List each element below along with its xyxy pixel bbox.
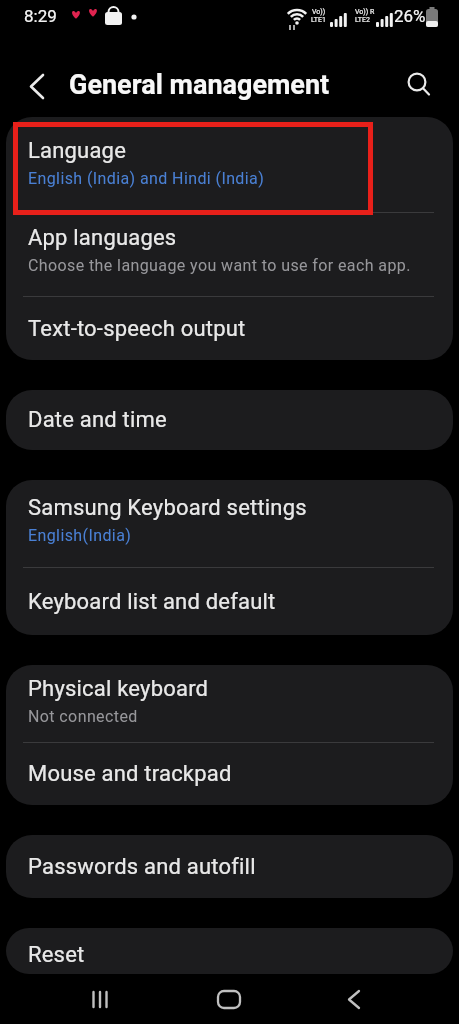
button[interactable] xyxy=(398,64,440,106)
button[interactable]: Text-to-speech output xyxy=(6,297,453,360)
button[interactable]: App languages xyxy=(6,213,453,296)
staticText: Reset xyxy=(28,942,85,968)
staticText: Not connected xyxy=(28,707,138,726)
button[interactable]: Reset xyxy=(6,928,453,974)
button[interactable]: Samsung Keyboard settings xyxy=(6,480,453,567)
button[interactable] xyxy=(209,975,249,1024)
staticText: 8:29 xyxy=(24,6,57,26)
button[interactable] xyxy=(80,975,120,1024)
button[interactable] xyxy=(20,66,60,106)
staticText: English (India) and Hindi (India) xyxy=(28,169,265,188)
staticText: Vo)) xyxy=(312,8,326,16)
staticText: Vo)) R xyxy=(355,8,375,16)
staticText: Passwords and autofill xyxy=(28,854,256,880)
staticText: LTE1 xyxy=(311,16,326,24)
staticText: General management xyxy=(69,69,330,101)
button[interactable]: Keyboard list and default xyxy=(6,568,453,635)
staticText: Physical keyboard xyxy=(28,676,209,702)
staticText: LTE2 xyxy=(355,16,370,24)
button[interactable]: Date and time xyxy=(6,390,453,450)
staticText: Mouse and trackpad xyxy=(28,761,232,787)
staticText: Date and time xyxy=(28,407,167,433)
button[interactable]: Passwords and autofill xyxy=(6,835,453,898)
staticText: Language xyxy=(28,138,127,164)
button[interactable]: Language xyxy=(6,117,453,212)
staticText: App languages xyxy=(28,225,177,251)
button[interactable]: Physical keyboard xyxy=(6,665,453,742)
button[interactable]: Mouse and trackpad xyxy=(6,743,453,805)
staticText: Samsung Keyboard settings xyxy=(28,495,307,521)
staticText: 26% xyxy=(394,6,426,26)
staticText: Keyboard list and default xyxy=(28,589,276,615)
button[interactable] xyxy=(334,975,374,1024)
staticText: Choose the language you want to use for … xyxy=(28,256,411,275)
staticText: English(India) xyxy=(28,526,132,545)
staticText: Text-to-speech output xyxy=(28,316,246,342)
